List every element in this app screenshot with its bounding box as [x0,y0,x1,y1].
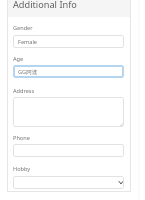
button[interactable]: Hobby dropdown [13,176,124,189]
button[interactable] [13,97,124,127]
staticText: Age [13,55,24,63]
staticText: Address [13,87,35,95]
staticText: Additional Info [13,0,77,11]
button[interactable]: Female [13,35,124,48]
button[interactable] [13,144,124,157]
staticText: Gender [13,24,33,32]
button[interactable]: GG阿達 [13,65,124,78]
staticText: Hobby [13,165,31,173]
staticText: GG阿達 [18,68,38,76]
staticText: Female [18,38,38,46]
staticText: Phone [13,134,30,142]
